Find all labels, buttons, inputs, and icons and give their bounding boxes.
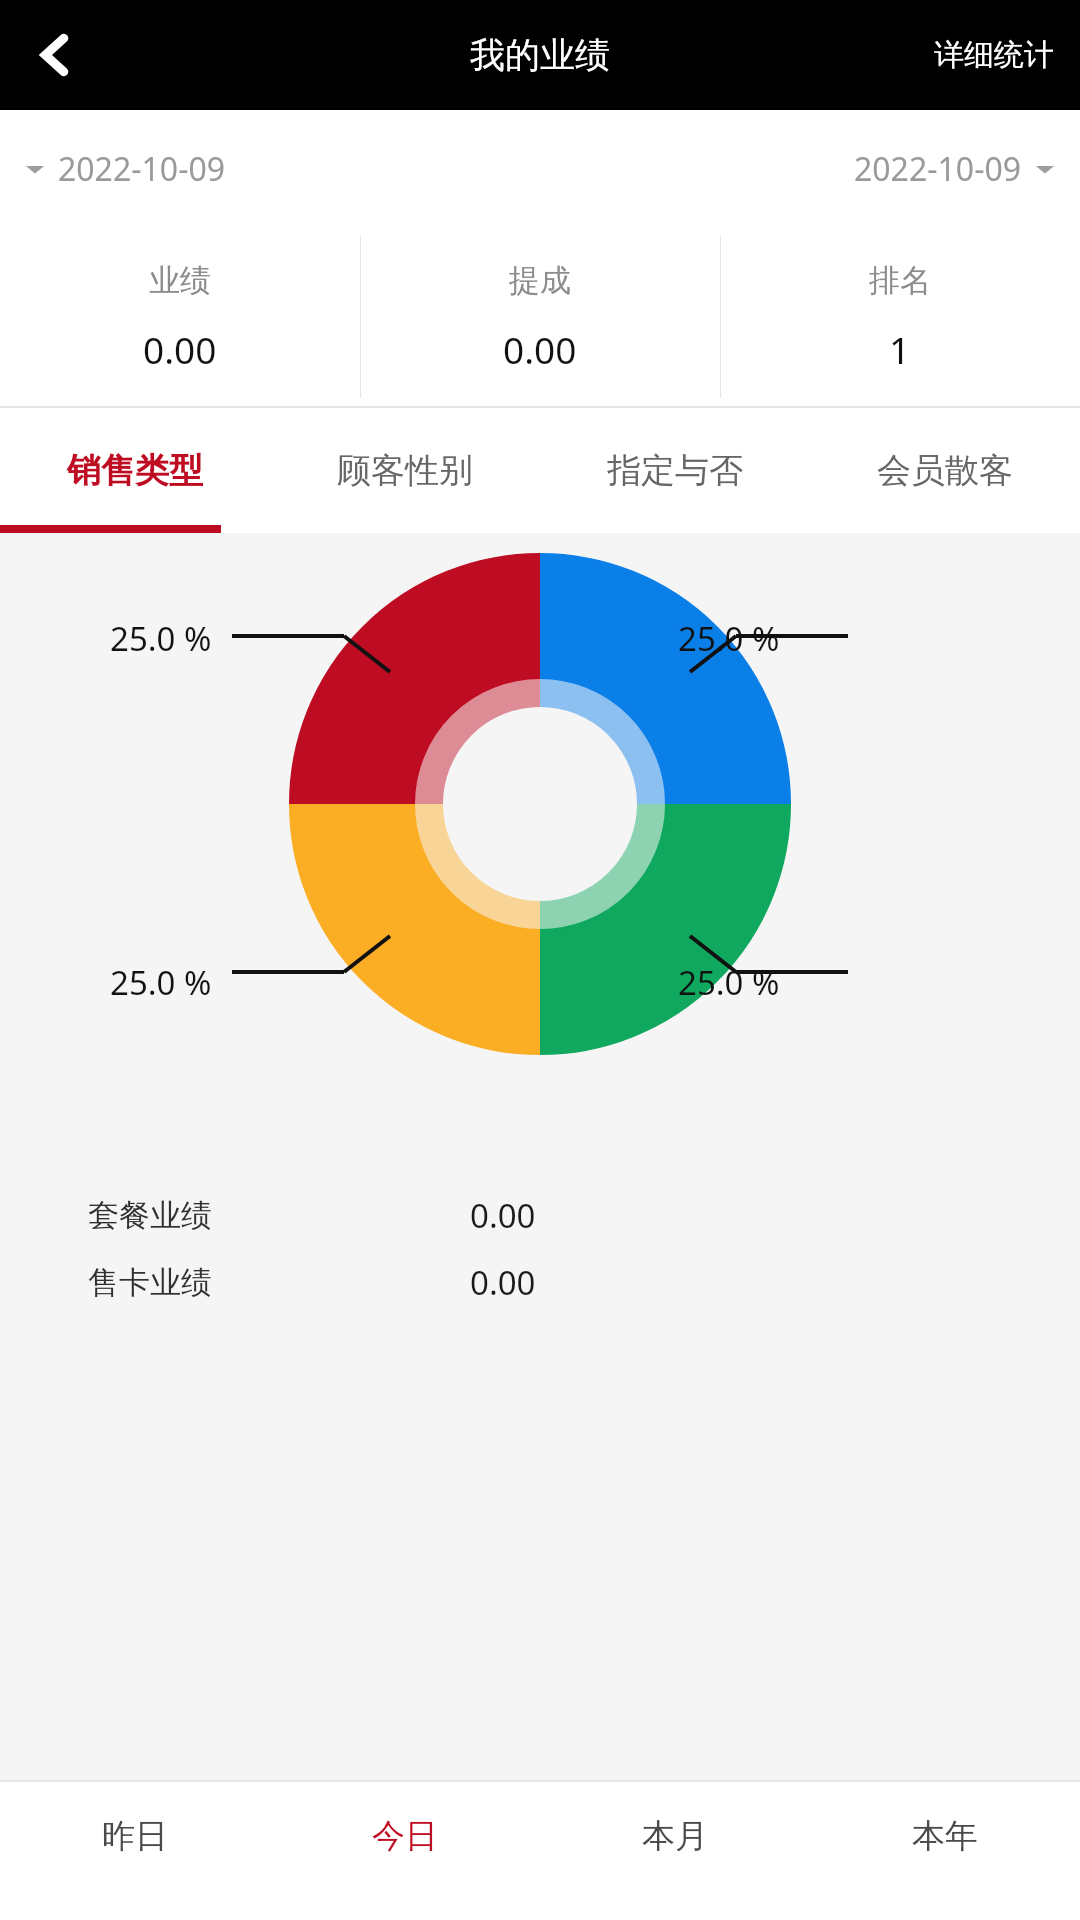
staticText: 25.0 %	[110, 616, 212, 661]
staticText: 详细统计	[934, 36, 1054, 74]
staticText: 0.00	[470, 1260, 536, 1305]
button[interactable]: 排名	[720, 228, 1080, 406]
staticText: 25.0 %	[678, 616, 780, 661]
staticText: 0.00	[503, 324, 577, 374]
staticText: 我的业绩	[470, 33, 610, 77]
staticText: 销售类型	[67, 449, 203, 492]
staticText: 今日	[372, 1815, 438, 1857]
staticText: 0.00	[470, 1193, 536, 1238]
button[interactable]: 会员散客	[810, 408, 1080, 533]
button[interactable]: 顾客性别	[270, 408, 540, 533]
staticText: 本年	[912, 1815, 978, 1857]
staticText: 本月	[642, 1815, 708, 1857]
button[interactable]: 销售类型	[0, 408, 270, 533]
button[interactable]: 本月	[540, 1782, 810, 1890]
staticText: 顾客性别	[337, 449, 473, 492]
staticText: 业绩	[149, 261, 211, 300]
button[interactable]: 今日	[270, 1782, 540, 1890]
button[interactable]: 2022-10-09	[24, 135, 226, 203]
staticText: 提成	[509, 261, 571, 300]
staticText: 1	[889, 324, 911, 374]
button[interactable]: 本年	[810, 1782, 1080, 1890]
staticText: 25.0 %	[110, 960, 212, 1005]
button[interactable]: Back	[0, 0, 110, 110]
button[interactable]: 售卡业绩	[0, 1260, 1080, 1305]
button[interactable]: 套餐业绩	[0, 1193, 1080, 1238]
button[interactable]: 提成	[360, 228, 720, 406]
staticText: 排名	[869, 261, 931, 300]
staticText: 2022-10-09	[58, 147, 226, 191]
staticText: 25.0 %	[678, 960, 780, 1005]
staticText: 会员散客	[877, 449, 1013, 492]
staticText: 2022-10-09	[854, 147, 1022, 191]
button[interactable]: 详细统计	[908, 0, 1080, 110]
button[interactable]: 昨日	[0, 1782, 270, 1890]
button[interactable]: 业绩	[0, 228, 360, 406]
button[interactable]: 指定与否	[540, 408, 810, 533]
staticText: 售卡业绩	[88, 1263, 212, 1302]
button[interactable]: 2022-10-09	[854, 135, 1056, 203]
staticText: 0.00	[143, 324, 217, 374]
staticText: 指定与否	[607, 449, 743, 492]
staticText: 昨日	[102, 1815, 168, 1857]
staticText: 套餐业绩	[88, 1196, 212, 1235]
